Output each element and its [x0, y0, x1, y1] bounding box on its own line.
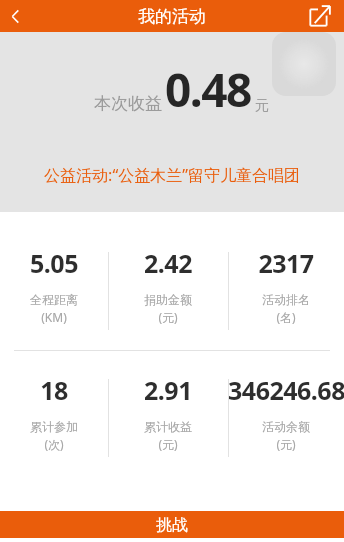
staticText: 2317 — [258, 246, 314, 280]
staticText: 我的活动 — [138, 6, 206, 27]
staticText: 元 — [255, 97, 269, 115]
staticText: 捐助金额 — [144, 292, 192, 307]
staticText: 5.05 — [30, 246, 78, 280]
staticText: 挑战 — [156, 515, 188, 535]
staticText: (次) — [44, 436, 64, 452]
staticText: 18 — [40, 373, 68, 407]
staticText: 全程距离 — [30, 292, 78, 307]
staticText: 活动余额 — [262, 419, 310, 434]
button[interactable]: Share — [307, 3, 333, 29]
staticText: 本次收益 — [94, 93, 162, 114]
staticText: 0.48 — [165, 58, 251, 121]
staticText: (元) — [158, 309, 178, 325]
staticText: 346246.68 — [228, 373, 344, 407]
button[interactable]: 挑战 — [0, 511, 344, 538]
staticText: (元) — [276, 436, 296, 452]
button[interactable]: Back — [0, 0, 32, 32]
staticText: (名) — [276, 309, 296, 325]
staticText: 累计参加 — [30, 419, 78, 434]
staticText: 累计收益 — [144, 419, 192, 434]
staticText: 活动排名 — [262, 292, 310, 307]
staticText: 2.42 — [144, 246, 192, 280]
staticText: 2.91 — [144, 373, 192, 407]
button[interactable]: 公益活动:“公益木兰”留守儿童合唱团 — [0, 164, 344, 186]
staticText: (KM) — [41, 309, 67, 325]
staticText: (元) — [158, 436, 178, 452]
